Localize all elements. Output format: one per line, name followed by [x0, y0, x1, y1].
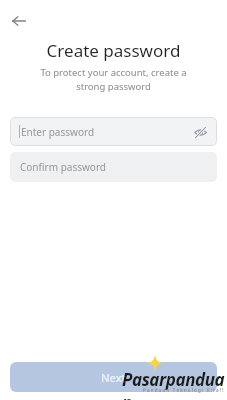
staticText: Confirm password — [20, 160, 106, 174]
staticText: Next — [101, 370, 126, 385]
staticText: Pasarpanduan — [122, 368, 227, 400]
button[interactable]: Back — [6, 8, 32, 34]
button[interactable]: Show password — [191, 123, 209, 141]
staticText: Create password — [0, 39, 227, 62]
staticText: To protect your account, create a strong… — [26, 66, 201, 93]
staticText: Enter password — [21, 125, 191, 139]
button[interactable]: Confirm password — [10, 152, 217, 182]
button[interactable]: Enter password — [10, 117, 217, 146]
button[interactable]: Next — [10, 362, 217, 392]
staticText: P a n d u a n T e k n o l o g i K i t a … — [143, 387, 224, 393]
